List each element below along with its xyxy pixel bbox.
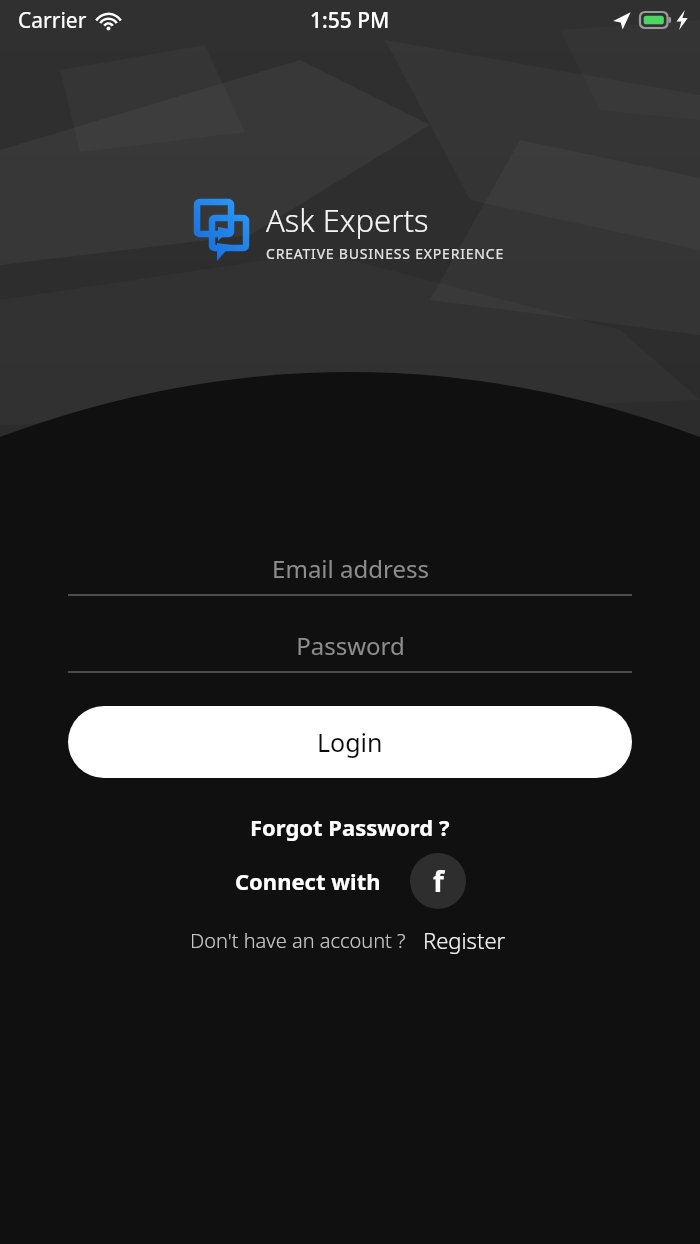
- button[interactable]: Password: [68, 619, 632, 671]
- staticText: Don't have an account ?: [190, 927, 406, 954]
- staticText: Email address: [272, 552, 429, 585]
- staticText: Carrier: [18, 6, 87, 35]
- button[interactable]: Connect with Facebook: [410, 853, 466, 909]
- button[interactable]: Forgot Password ?: [242, 808, 458, 846]
- staticText: Connect with: [235, 866, 381, 896]
- button[interactable]: Register: [419, 923, 510, 957]
- staticText: Register: [423, 925, 506, 955]
- staticText: f: [433, 862, 444, 900]
- staticText: CREATIVE BUSINESS EXPERIENCE: [266, 244, 505, 263]
- button[interactable]: Login: [68, 706, 632, 778]
- staticText: Password: [296, 629, 405, 662]
- staticText: 1:55 PM: [310, 6, 390, 35]
- button[interactable]: Email address: [68, 542, 632, 594]
- staticText: Forgot Password ?: [250, 812, 450, 842]
- staticText: Login: [317, 725, 383, 759]
- staticText: Ask Experts: [266, 199, 429, 241]
